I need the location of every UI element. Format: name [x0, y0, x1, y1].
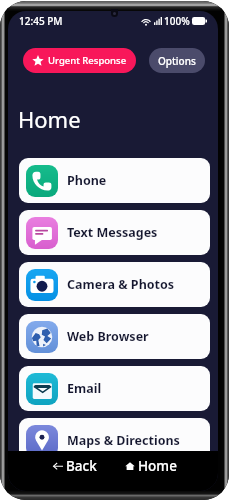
- button[interactable]: Urgent Response: [23, 48, 136, 73]
- staticText: Home: [138, 457, 177, 475]
- staticText: Email: [67, 380, 102, 397]
- button[interactable]: Home: [113, 453, 189, 479]
- button[interactable]: Maps & Directions: [19, 418, 210, 463]
- button[interactable]: Camera & Photos: [19, 262, 210, 307]
- staticText: 12:45 PM: [19, 14, 63, 28]
- staticText: Maps & Directions: [67, 432, 180, 449]
- staticText: 100%: [164, 14, 190, 28]
- staticText: Home: [18, 104, 81, 134]
- staticText: Options: [158, 54, 196, 68]
- button[interactable]: Web Browser: [19, 314, 210, 359]
- button[interactable]: Options: [149, 48, 205, 73]
- staticText: Web Browser: [67, 328, 149, 345]
- staticText: Text Messages: [67, 224, 158, 241]
- staticText: Phone: [67, 172, 107, 189]
- staticText: Camera & Photos: [67, 276, 175, 293]
- staticText: Urgent Response: [48, 54, 127, 67]
- button[interactable]: Email: [19, 366, 210, 411]
- button[interactable]: Back: [41, 453, 109, 479]
- button[interactable]: Phone: [19, 158, 210, 203]
- staticText: Back: [66, 457, 97, 475]
- button[interactable]: Text Messages: [19, 210, 210, 255]
